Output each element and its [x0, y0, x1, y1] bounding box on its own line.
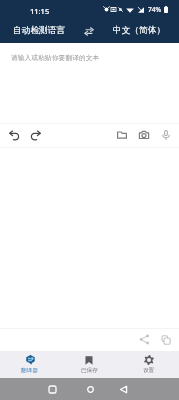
staticText: 自动检测语言 — [13, 25, 66, 36]
button[interactable]: 中文（简体） — [99, 17, 179, 44]
button[interactable]: 设置 — [119, 351, 179, 378]
button[interactable]: Camera — [135, 126, 153, 144]
staticText: 中文（简体） — [113, 25, 166, 36]
staticText: 设置 — [143, 367, 155, 374]
button[interactable]: Back — [115, 381, 131, 397]
button[interactable]: Documents — [113, 126, 131, 144]
button[interactable]: Home — [82, 381, 98, 397]
button[interactable]: Swap languages — [79, 21, 99, 41]
button[interactable]: 已保存 — [59, 351, 119, 378]
button[interactable]: Redo — [26, 126, 44, 144]
staticText: 11:15 — [30, 6, 50, 16]
button[interactable]: Share — [138, 333, 150, 345]
staticText: 74% — [148, 5, 162, 14]
button[interactable]: 自动检测语言 — [0, 17, 79, 44]
button[interactable]: 翻译器 — [0, 351, 59, 378]
button[interactable]: Undo — [5, 126, 23, 144]
button[interactable]: Copy — [160, 334, 172, 346]
staticText: 翻译器 — [21, 367, 38, 374]
button[interactable]: Recents — [44, 381, 60, 397]
staticText: 请输入或粘贴你要翻译的文本 — [11, 53, 100, 62]
staticText: 已保存 — [81, 367, 98, 374]
button[interactable]: Voice input — [157, 126, 175, 144]
